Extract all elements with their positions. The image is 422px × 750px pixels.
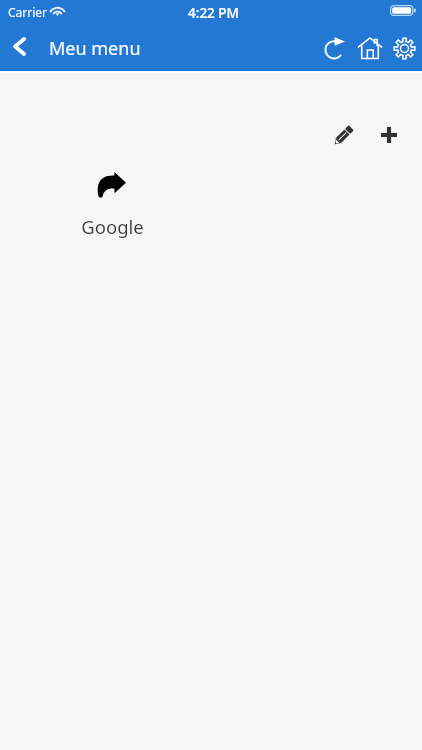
staticText: Carrier [8,4,48,20]
staticText: Meu menu [49,36,141,61]
button[interactable]: Back [0,26,38,70]
staticText: Google [81,214,144,239]
button[interactable]: Google [72,166,152,239]
button[interactable]: Home [351,32,389,64]
button[interactable]: Settings [387,32,422,64]
staticText: 4:22 PM [188,4,239,22]
button[interactable]: Edit [322,115,364,157]
button[interactable]: Add [368,114,410,156]
button[interactable]: Refresh [316,32,353,64]
